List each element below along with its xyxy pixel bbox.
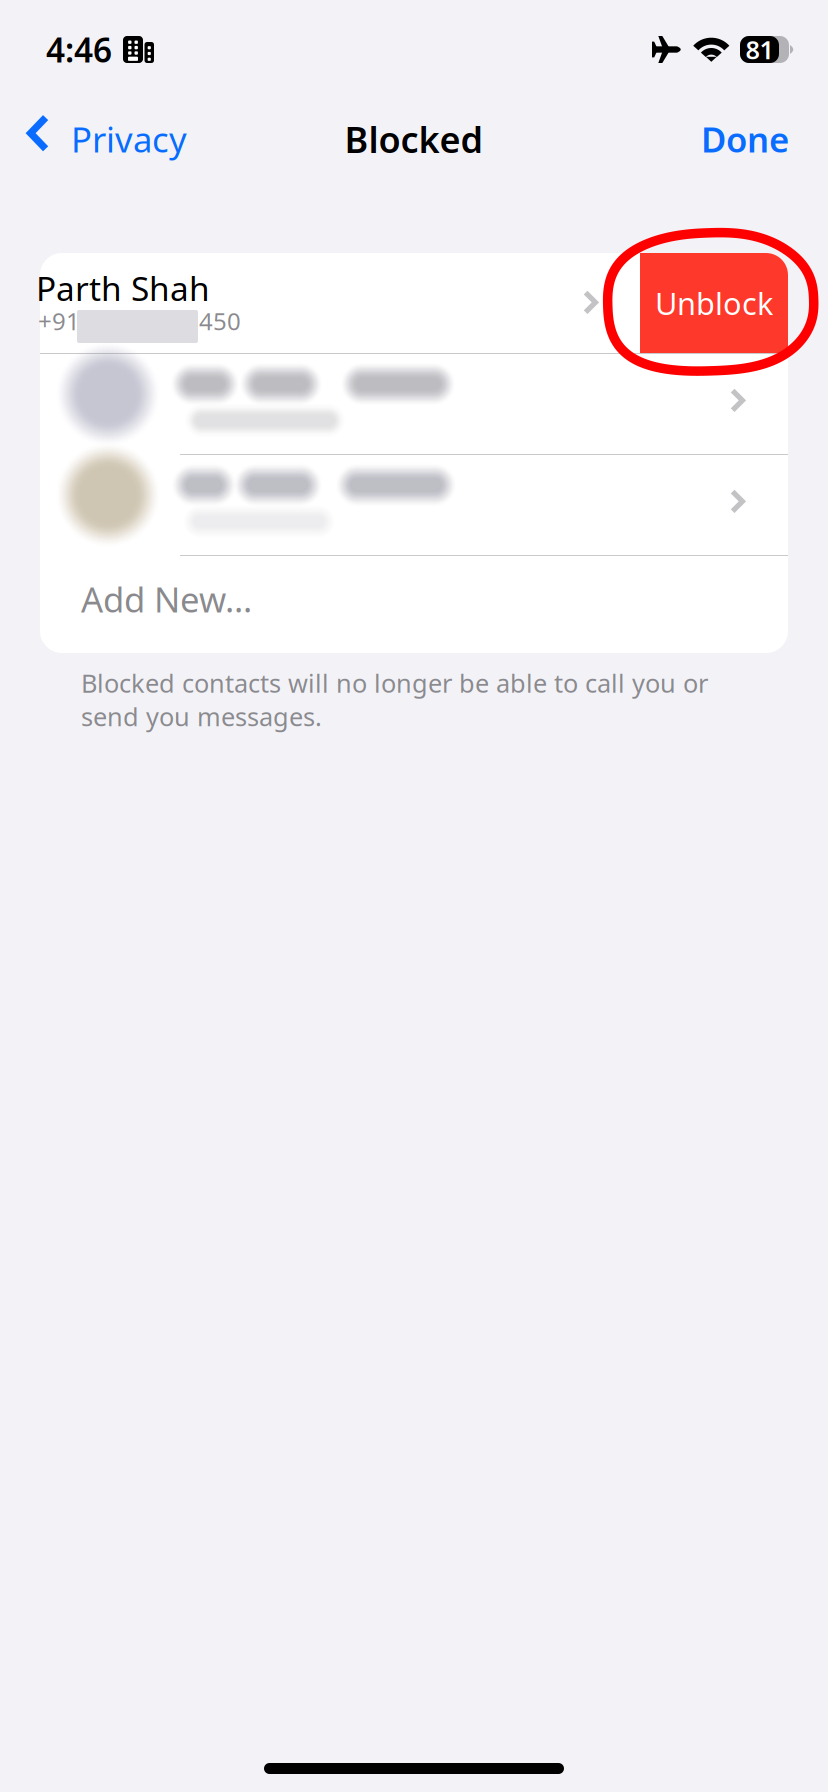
staticText: +91	[38, 305, 80, 337]
staticText: Privacy	[71, 116, 187, 162]
staticText: Blocked contacts will no longer be able …	[81, 666, 708, 733]
staticText: Blocked	[344, 115, 483, 163]
staticText: 4:46	[46, 27, 112, 72]
staticText: Unblock	[655, 283, 773, 323]
button[interactable]	[40, 354, 788, 454]
staticText: 81	[745, 33, 773, 66]
button[interactable]: Done	[677, 99, 828, 191]
button[interactable]	[40, 455, 788, 555]
button[interactable]: Add New...	[40, 556, 788, 653]
staticText: Done	[701, 116, 789, 162]
button[interactable]: Unblock	[640, 253, 788, 353]
staticText: Add New...	[81, 576, 252, 622]
staticText: Parth Shah	[36, 266, 210, 310]
staticText: 450	[199, 305, 241, 337]
button[interactable]: Privacy	[0, 99, 193, 191]
